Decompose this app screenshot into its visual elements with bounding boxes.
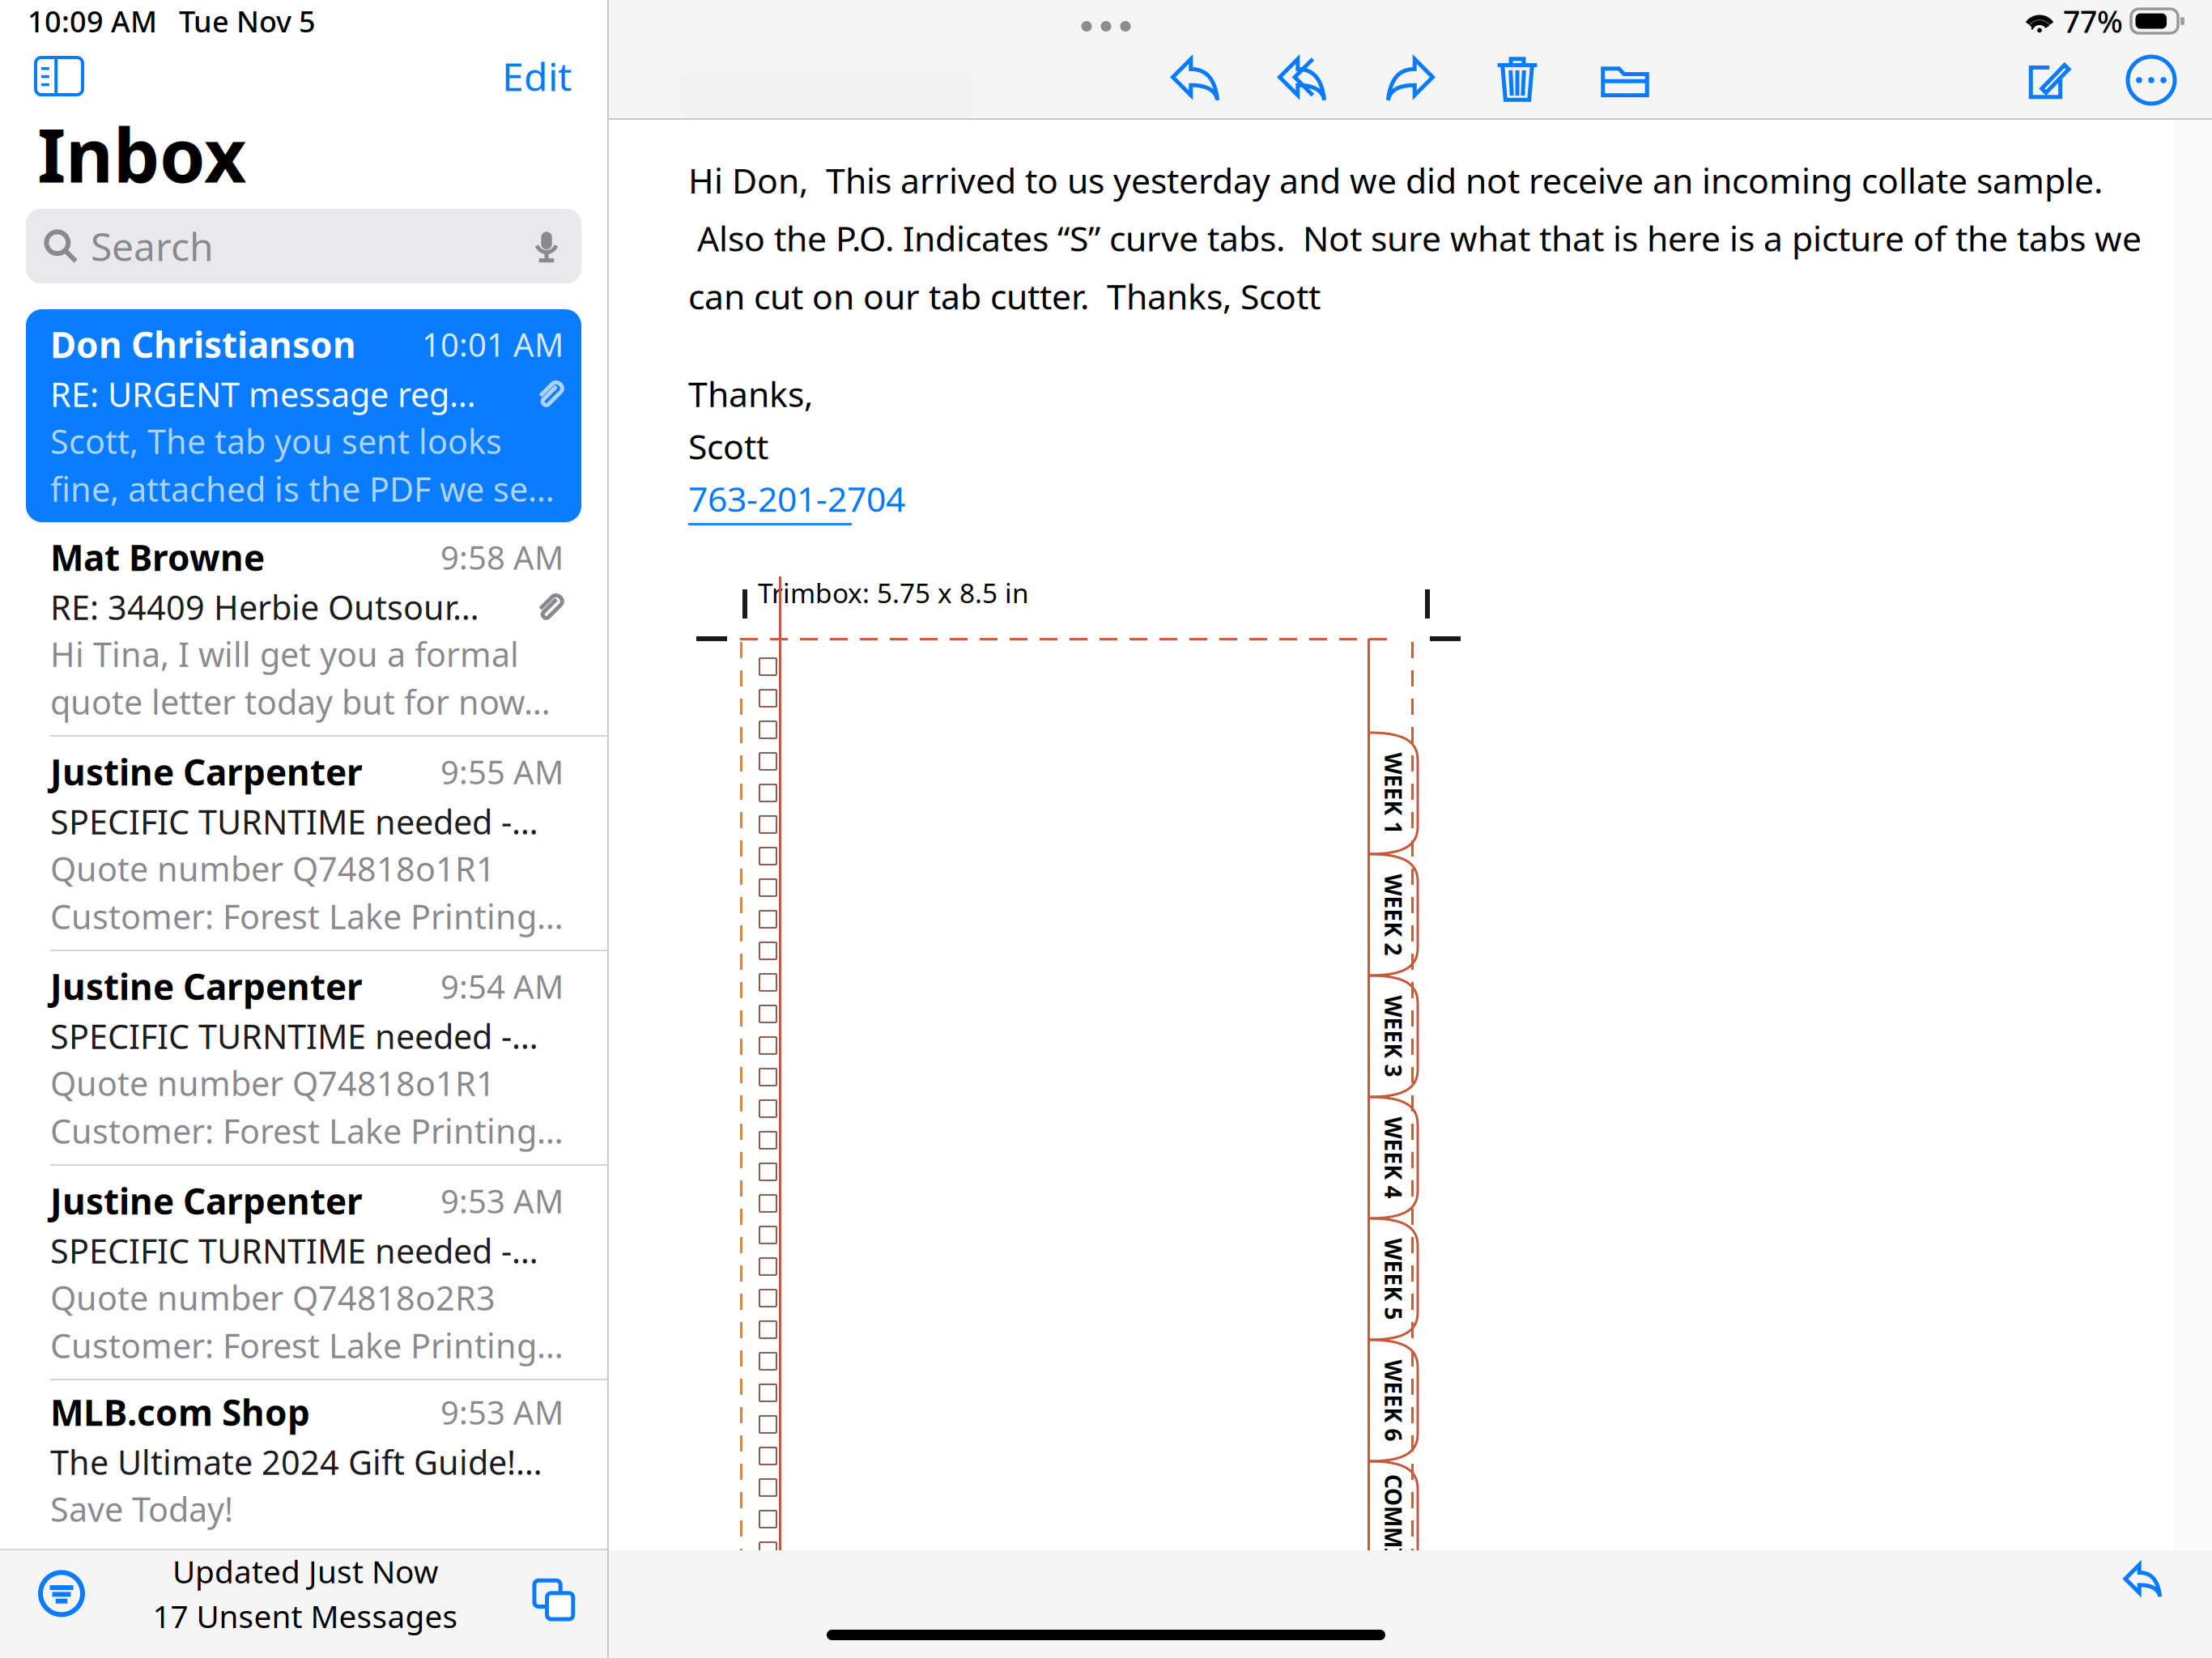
staticText: Quote number Q74818o1R1: [50, 1061, 496, 1105]
staticText: Scott: [688, 423, 768, 469]
staticText: fine, attached is the PDF we se…: [50, 466, 555, 511]
staticText: Updated Just Now: [173, 1550, 438, 1592]
staticText: Save Today!: [50, 1487, 233, 1531]
staticText: Inbox: [37, 105, 246, 203]
button[interactable]: Reply: [1171, 55, 1221, 105]
staticText: WEEK 4: [1353, 1143, 1434, 1173]
staticText: Customer: Forest Lake Printing,…: [50, 894, 564, 938]
staticText: MLB.com Shop: [50, 1388, 310, 1436]
staticText: 10:09 AM: [28, 2, 157, 40]
staticText: Thanks,: [688, 371, 813, 417]
staticText: WEEK 6: [1353, 1385, 1434, 1416]
button[interactable]: Forward: [1385, 55, 1435, 105]
staticText: SPECIFIC TURNTIME needed -…: [50, 1014, 538, 1058]
staticText: Justine Carpenter: [50, 748, 363, 795]
button[interactable]: Delete: [1491, 54, 1543, 106]
button[interactable]: MLB.com Shop: [0, 1380, 607, 1539]
staticText: Search: [91, 220, 214, 272]
staticText: Hi Tina, I will get you a formal: [50, 632, 519, 676]
staticText: WEEK 2: [1353, 900, 1434, 930]
staticText: Scott, The tab you sent looks: [50, 419, 502, 463]
button[interactable]: Reply All: [1278, 55, 1328, 105]
staticText: Don Christianson: [50, 321, 356, 368]
button[interactable]: Justine Carpenter: [0, 737, 607, 951]
staticText: 17 Unsent Messages: [153, 1595, 458, 1637]
staticText: 9:54 AM: [440, 965, 564, 1008]
button[interactable]: Reply: [2112, 1550, 2174, 1612]
staticText: 10:01 AM: [422, 323, 564, 366]
staticText: 763-201-2704: [688, 475, 905, 521]
button[interactable]: Message Stack: [520, 1566, 575, 1621]
button[interactable]: Justine Carpenter: [0, 1166, 607, 1380]
staticText: quote letter today but for now…: [50, 679, 551, 724]
staticText: Trimbox: 5.75 x 8.5 in: [758, 575, 1029, 611]
staticText: Also the P.O. Indicates “S” curve tabs. …: [688, 215, 2142, 261]
staticText: Tue Nov 5: [157, 2, 316, 40]
staticText: Edit: [502, 50, 572, 102]
button[interactable]: Filter Messages: [32, 1564, 91, 1623]
button[interactable]: Don Christianson: [0, 309, 607, 522]
staticText: 77%: [2063, 1, 2123, 41]
staticText: The Ultimate 2024 Gift Guide!…: [50, 1440, 542, 1484]
staticText: Mat Browne: [50, 534, 265, 581]
button[interactable]: More: [2128, 57, 2175, 104]
staticText: Justine Carpenter: [50, 963, 363, 1010]
button[interactable]: Edit: [491, 39, 583, 113]
staticText: Quote number Q74818o2R3: [50, 1275, 496, 1320]
button[interactable]: Toggle Sidebar: [24, 46, 94, 106]
staticText: Customer: Forest Lake Printing,…: [50, 1323, 564, 1367]
staticText: 9:55 AM: [440, 750, 564, 793]
staticText: Quote number Q74818o1R1: [50, 846, 496, 891]
button[interactable]: Multitasking Controls: [1067, 11, 1145, 41]
staticText: FAQ: [1371, 1628, 1416, 1658]
staticText: RE: URGENT message reg…: [50, 372, 476, 416]
staticText: SPECIFIC TURNTIME needed -…: [50, 799, 538, 844]
staticText: 9:58 AM: [440, 536, 564, 579]
button[interactable]: Justine Carpenter: [0, 951, 607, 1166]
button[interactable]: Compose: [2026, 59, 2068, 101]
button[interactable]: Mat Browne: [0, 522, 607, 737]
staticText: WEEK 1: [1353, 778, 1434, 808]
staticText: COMMIT: [1346, 1507, 1441, 1537]
staticText: Customer: Forest Lake Printing,…: [50, 1108, 564, 1153]
staticText: Hi Don, This arrived to us yesterday and…: [688, 157, 2103, 203]
button[interactable]: Move to Folder: [1600, 55, 1650, 105]
button[interactable]: 763-201-2704: [688, 469, 2170, 525]
staticText: 9:53 AM: [440, 1179, 564, 1222]
staticText: SPECIFIC TURNTIME needed -…: [50, 1228, 538, 1273]
staticText: RE: 34409 Herbie Outsour…: [50, 585, 479, 629]
staticText: WEEK 3: [1353, 1021, 1434, 1051]
staticText: can cut on our tab cutter. Thanks, Scott: [688, 273, 1321, 319]
staticText: 9:53 AM: [440, 1391, 564, 1434]
staticText: WEEK 5: [1353, 1264, 1434, 1294]
staticText: Justine Carpenter: [50, 1177, 363, 1224]
